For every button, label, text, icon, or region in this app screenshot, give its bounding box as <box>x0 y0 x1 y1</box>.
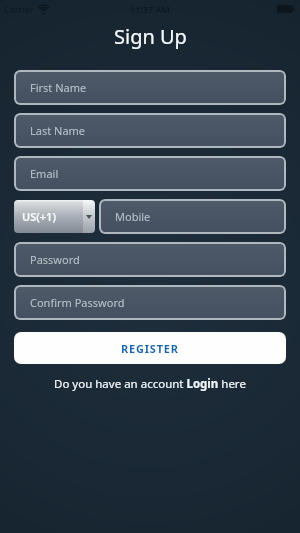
staticText: Sign Up <box>114 23 187 50</box>
button[interactable]: REGISTER <box>14 332 286 364</box>
staticText: Do you have an account Login here <box>54 376 246 392</box>
staticText: Mobile <box>115 209 151 224</box>
staticText: US(+1) <box>22 209 56 224</box>
staticText: Password <box>30 252 80 267</box>
button[interactable]: Mobile <box>99 199 286 234</box>
staticText: REGISTER <box>121 341 179 356</box>
button[interactable]: US(+1) <box>14 200 95 233</box>
staticText: First Name <box>30 80 87 95</box>
button[interactable]: Email <box>14 156 286 191</box>
staticText: 11:37 AM <box>130 3 170 15</box>
staticText: Carrier <box>4 3 34 15</box>
staticText: Confirm Password <box>30 295 125 310</box>
staticText: Email <box>30 166 59 181</box>
button[interactable]: Confirm Password <box>14 285 286 320</box>
button[interactable]: Do you have an account Login here <box>14 376 286 392</box>
button[interactable]: Last Name <box>14 113 286 148</box>
button[interactable]: Password <box>14 242 286 277</box>
staticText: Last Name <box>30 123 86 138</box>
button[interactable]: First Name <box>14 70 286 105</box>
